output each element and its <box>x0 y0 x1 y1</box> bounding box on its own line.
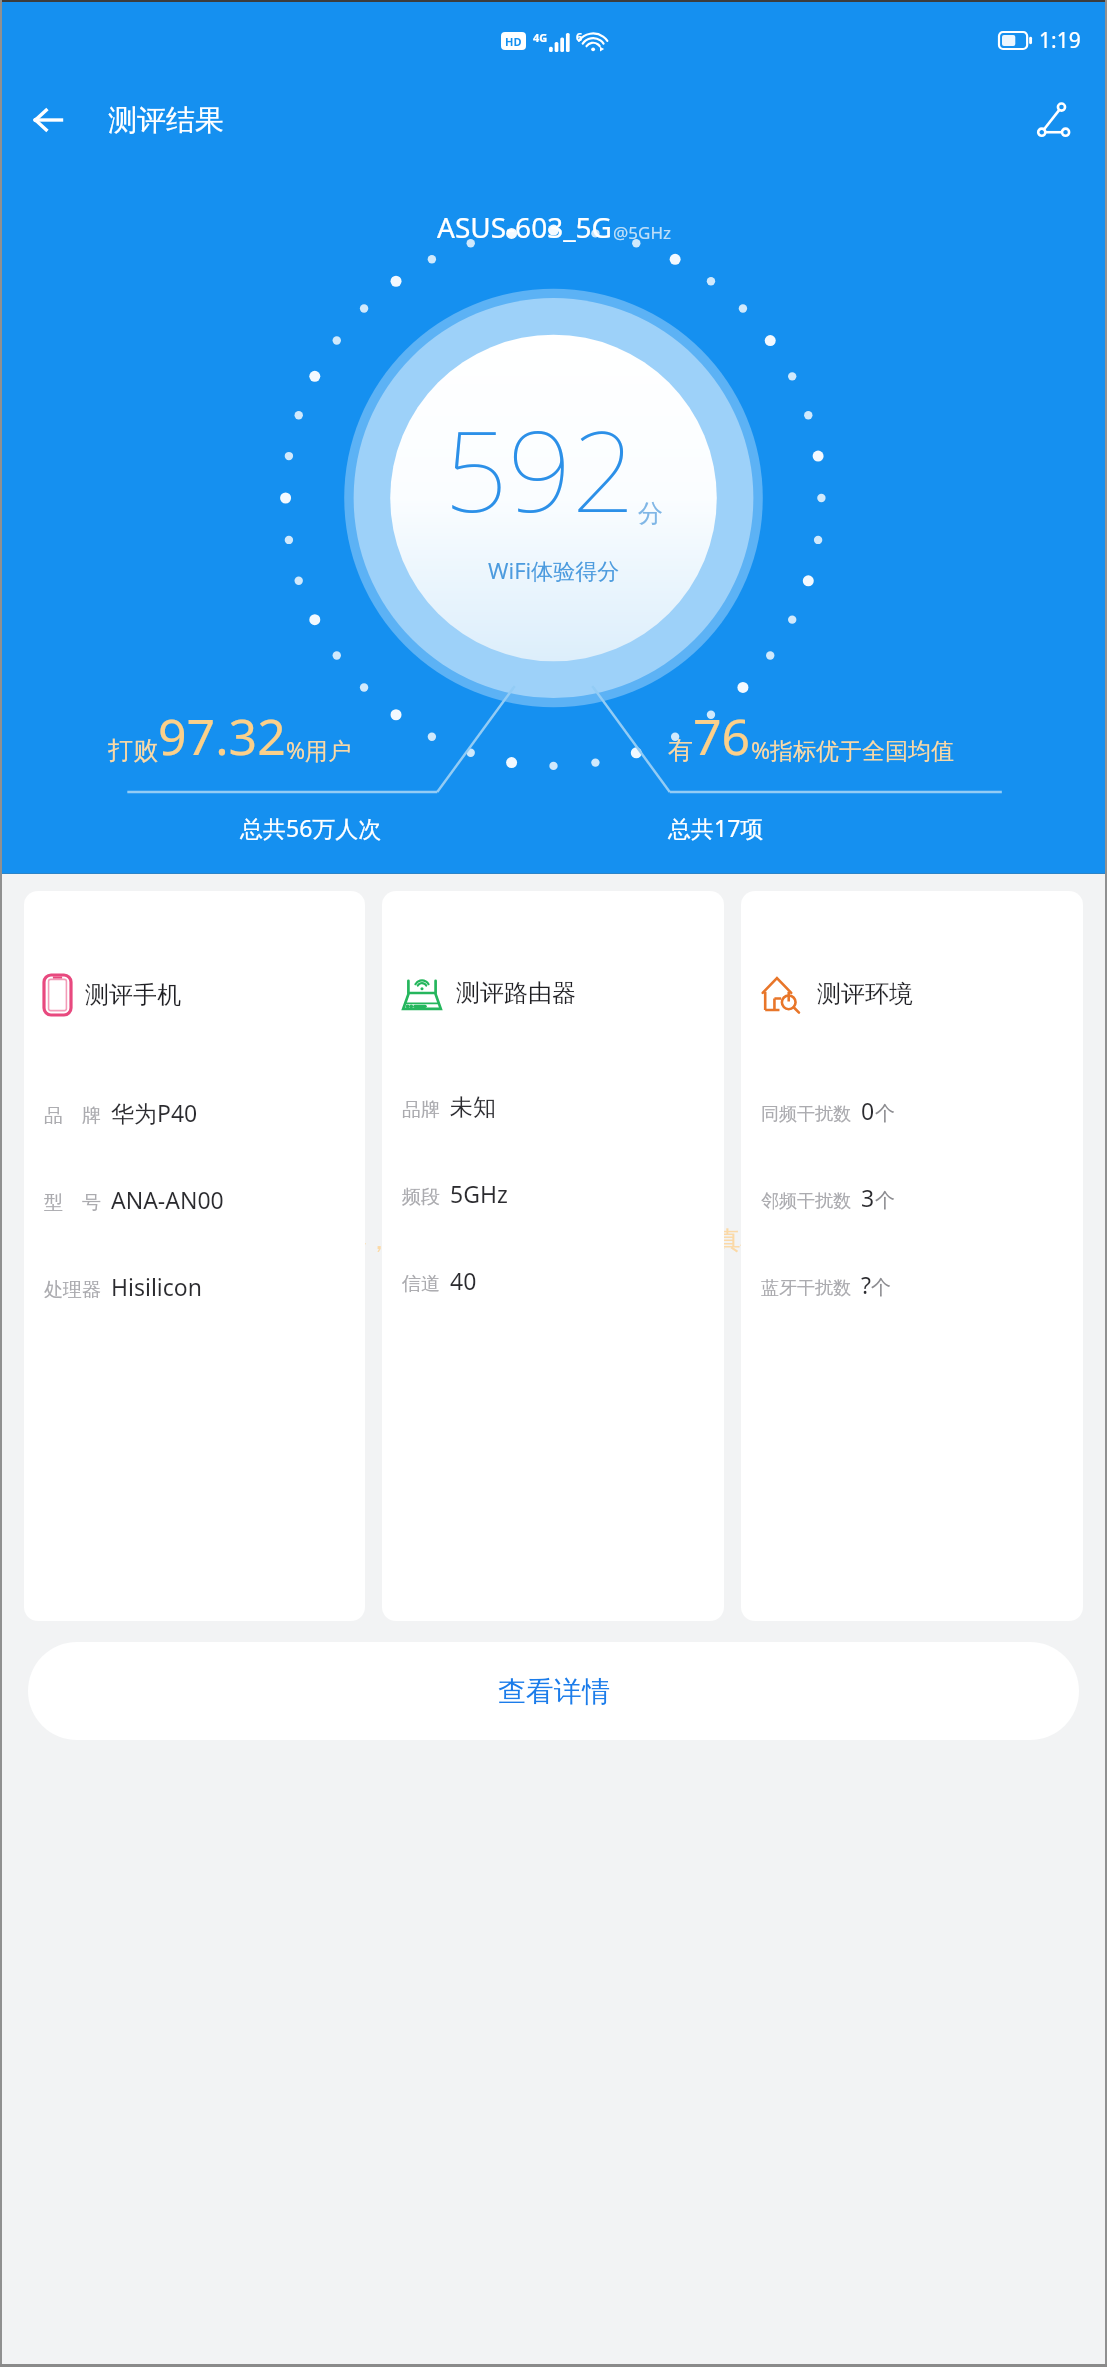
staticText: 4G <box>533 30 548 45</box>
staticText: 个 <box>875 1101 895 1126</box>
button[interactable]: Share <box>1023 89 1085 151</box>
staticText: 品 牌 <box>44 1102 101 1128</box>
staticText: 处理器 <box>44 1278 101 1302</box>
staticText: 总共56万人次 <box>240 812 382 843</box>
staticText: @5GHz <box>613 221 671 244</box>
staticText: 邻频干扰数 <box>761 1190 851 1213</box>
staticText: 蓝牙干扰数 <box>761 1277 851 1300</box>
staticText: 592 <box>444 392 636 545</box>
staticText: 测评环境 <box>817 979 913 1009</box>
button[interactable]: 查看详情 <box>28 1642 1079 1740</box>
staticText: 40 <box>450 1265 477 1296</box>
staticText: 0 <box>861 1095 875 1126</box>
staticText: 频段 <box>402 1185 440 1209</box>
staticText: 个 <box>875 1188 895 1213</box>
staticText: 分 <box>638 498 663 529</box>
staticText: ? <box>861 1269 871 1300</box>
staticText: 测评手机 <box>85 980 181 1010</box>
staticText: 查看详情 <box>498 1674 610 1709</box>
staticText: 总共17项 <box>668 812 764 843</box>
staticText: 信道 <box>402 1272 440 1296</box>
staticText: 有 <box>668 735 693 766</box>
staticText: 97.32 <box>158 702 286 770</box>
staticText: 3 <box>861 1182 875 1213</box>
button[interactable]: Back <box>20 92 76 148</box>
staticText: %用户 <box>286 734 352 765</box>
staticText: 个 <box>871 1275 891 1300</box>
staticText: 未知 <box>450 1093 496 1122</box>
button[interactable]: 测评路由器 <box>382 891 724 1621</box>
button[interactable]: 测评环境 <box>741 891 1083 1621</box>
staticText: 5GHz <box>450 1178 508 1209</box>
staticText: HD <box>505 34 522 49</box>
staticText: 同频干扰数 <box>761 1103 851 1126</box>
staticText: 型 号 <box>44 1189 101 1215</box>
staticText: 测评结果 <box>108 102 224 139</box>
staticText: ANA-AN00 <box>111 1184 224 1215</box>
staticText: 测评路由器 <box>456 978 576 1008</box>
staticText: %指标优于全国均值 <box>751 734 955 765</box>
staticText: 1:19 <box>1039 26 1081 55</box>
staticText: 恭喜，荣登WiFi测评金牌榜，路由器真棒！ <box>0 1222 1107 1256</box>
staticText: 打败 <box>108 735 158 766</box>
staticText: Hisilicon <box>111 1271 202 1302</box>
staticText: WiFi体验得分 <box>488 555 620 585</box>
staticText: 6 <box>576 29 583 44</box>
staticText: ASUS-603_5G <box>437 208 613 246</box>
button[interactable]: 测评手机 <box>24 891 365 1621</box>
staticText: 76 <box>693 702 751 770</box>
staticText: 华为P40 <box>111 1097 198 1128</box>
staticText: 品牌 <box>402 1098 440 1122</box>
